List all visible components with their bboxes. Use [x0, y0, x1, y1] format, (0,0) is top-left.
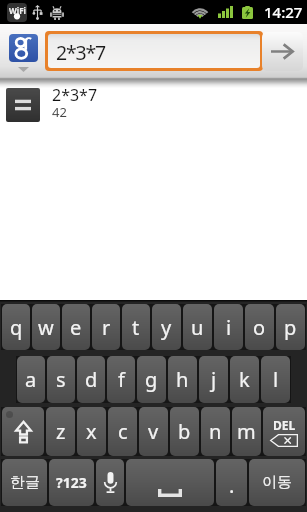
staticText: b [178, 418, 191, 445]
button[interactable]: 2*3*7 [0, 84, 307, 125]
staticText: h [176, 366, 189, 393]
button[interactable]: d [77, 356, 105, 403]
button[interactable]: m [232, 407, 261, 456]
staticText: r [102, 314, 111, 341]
staticText: . [229, 472, 235, 499]
staticText: e [70, 314, 82, 341]
staticText: 14:27 [264, 2, 303, 22]
button[interactable]: l [261, 356, 290, 403]
staticText: x [86, 418, 97, 445]
staticText: ?123 [56, 473, 87, 492]
button[interactable]: r [92, 304, 120, 350]
button[interactable]: Voice input [96, 459, 124, 506]
staticText: 42 [52, 103, 67, 121]
staticText: j [211, 366, 217, 393]
button[interactable]: Search engine: Google [9, 34, 38, 72]
button[interactable]: c [108, 407, 137, 456]
staticText: i [226, 314, 232, 341]
staticText: m [237, 418, 256, 445]
button[interactable]: n [201, 407, 230, 456]
staticText: WiFi [9, 5, 26, 16]
button[interactable]: Shift [2, 407, 44, 456]
button[interactable]: 한글 [2, 459, 47, 506]
staticText: g [145, 366, 158, 393]
staticText: DEL [273, 417, 296, 433]
staticText: 한글 [10, 473, 40, 492]
staticText: q [10, 314, 23, 341]
button[interactable]: h [168, 356, 197, 403]
staticText: y [161, 314, 172, 341]
button[interactable]: x [77, 407, 106, 456]
staticText: 이동 [262, 473, 292, 492]
button[interactable]: f [107, 356, 135, 403]
staticText: s [56, 366, 66, 393]
button[interactable]: u [183, 304, 212, 350]
button[interactable]: z [46, 407, 75, 456]
button[interactable]: 이동 [249, 459, 305, 506]
button[interactable]: t [122, 304, 150, 350]
staticText: p [284, 314, 297, 341]
button[interactable]: b [170, 407, 199, 456]
button[interactable]: . [216, 459, 247, 506]
button[interactable]: a [17, 356, 45, 403]
button[interactable]: ?123 [49, 459, 94, 506]
staticText: n [209, 418, 222, 445]
staticText: w [38, 314, 54, 341]
button[interactable]: g [137, 356, 166, 403]
staticText: v [148, 418, 159, 445]
staticText: f [118, 366, 125, 393]
button[interactable]: p [276, 304, 305, 350]
button[interactable]: y [152, 304, 181, 350]
button[interactable]: i [214, 304, 243, 350]
staticText: 2*3*7 [56, 39, 105, 66]
button[interactable]: s [47, 356, 75, 403]
staticText: l [273, 366, 279, 393]
staticText: o [253, 314, 266, 341]
button[interactable]: q [2, 304, 30, 350]
button[interactable]: Space [126, 459, 214, 506]
button[interactable]: 2*3*7 [48, 34, 260, 68]
button[interactable]: o [245, 304, 274, 350]
staticText: t [132, 314, 140, 341]
staticText: c [118, 418, 128, 445]
staticText: a [25, 366, 37, 393]
staticText: u [191, 314, 204, 341]
button[interactable]: Delete [263, 407, 305, 456]
button[interactable]: Search [262, 32, 303, 71]
button[interactable]: e [62, 304, 90, 350]
button[interactable]: w [32, 304, 60, 350]
button[interactable]: v [139, 407, 168, 456]
staticText: z [56, 418, 66, 445]
staticText: 2*3*7 [52, 84, 98, 106]
staticText: k [239, 366, 250, 393]
button[interactable]: k [230, 356, 259, 403]
button[interactable]: j [199, 356, 228, 403]
staticText: d [85, 366, 98, 393]
